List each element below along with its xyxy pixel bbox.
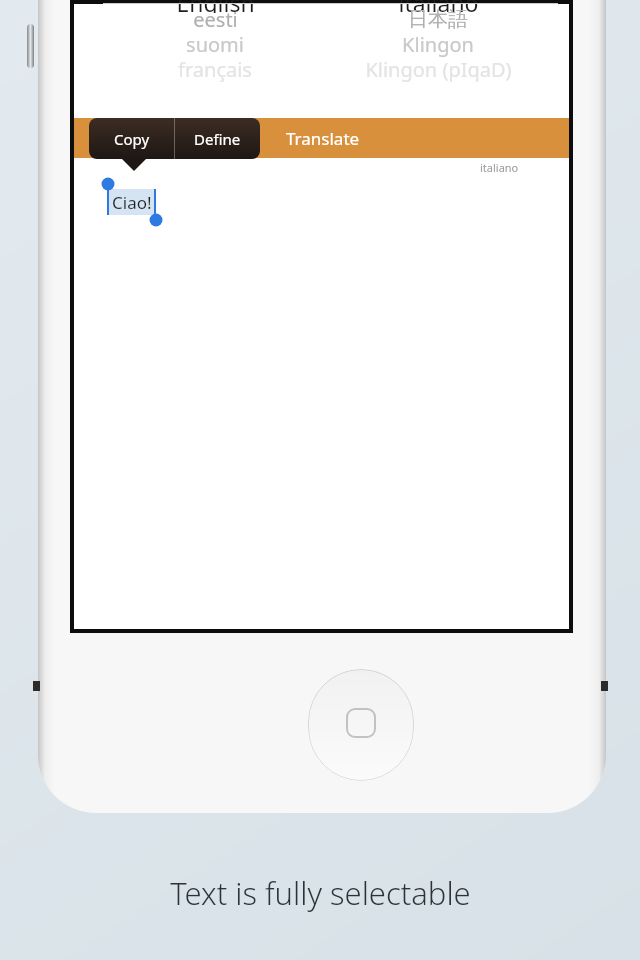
button[interactable]: suomi [103,31,327,57]
button[interactable]: Klingon (pIqaD) [318,56,558,82]
staticText: Define [194,129,241,149]
button[interactable]: français [103,56,327,82]
staticText: 日本語 [408,7,468,32]
button[interactable]: Ciao! [107,189,156,215]
staticText: Translate [286,127,360,150]
button[interactable]: Klingon [318,31,558,57]
button[interactable]: Volume button [27,24,34,68]
button[interactable]: 日本語 [318,6,558,32]
button[interactable]: eesti [103,6,327,32]
staticText: Klingon [402,31,474,57]
button[interactable]: Define [175,118,260,159]
staticText: Copy [114,129,150,149]
staticText: Klingon (pIqaD) [365,56,512,82]
button[interactable]: Copy [89,118,174,159]
staticText: English [176,0,255,13]
button[interactable]: Translate [74,118,569,158]
staticText: Text is fully selectable [170,872,471,914]
staticText: français [178,56,252,82]
staticText: suomi [186,31,244,57]
button[interactable]: English [103,0,327,13]
staticText: italiano [398,0,479,13]
button[interactable]: Home [308,669,414,781]
button[interactable]: italiano [318,0,558,13]
staticText: Ciao! [112,191,152,214]
staticText: italiano [480,160,519,175]
staticText: eesti [193,6,238,32]
